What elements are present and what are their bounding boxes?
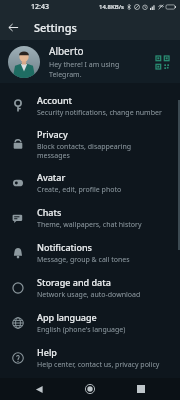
staticText: Hey there! I am using Telegram.	[49, 60, 152, 80]
button[interactable]: App language	[0, 305, 180, 340]
button[interactable]: Avatar	[0, 165, 180, 200]
button[interactable]: Storage and data	[0, 270, 180, 305]
staticText: Privacy	[37, 128, 68, 140]
staticText: English (phone's language)	[37, 325, 126, 335]
staticText: Create, edit, profile photo	[37, 185, 122, 195]
staticText: 14.8KB/s	[99, 3, 124, 11]
button[interactable]: QR code	[152, 52, 172, 72]
button[interactable]: Back	[27, 378, 51, 400]
staticText: Help	[37, 346, 57, 358]
staticText: Alberto	[49, 44, 84, 58]
staticText: Account	[37, 94, 72, 106]
button[interactable]: Notifications	[0, 235, 180, 270]
button[interactable]: Chats	[0, 200, 180, 235]
staticText: Security notifications, change number	[37, 108, 162, 118]
staticText: Notifications	[37, 241, 92, 253]
staticText: Block contacts, disappearing messages	[37, 142, 132, 160]
staticText: Network usage, auto-download	[37, 290, 141, 300]
button[interactable]: Account	[0, 88, 180, 123]
button[interactable]: Back	[0, 14, 26, 40]
staticText: Settings	[34, 20, 77, 35]
staticText: App language	[37, 311, 97, 323]
staticText: Message, group & call tones	[37, 255, 130, 265]
staticText: Chats	[37, 206, 62, 218]
button[interactable]: Alberto	[0, 40, 180, 83]
staticText: Help center, contact us, privacy policy	[37, 360, 160, 370]
staticText: Avatar	[37, 171, 66, 183]
staticText: Theme, wallpapers, chat history	[37, 220, 142, 230]
button[interactable]: Privacy	[0, 123, 180, 165]
button[interactable]: Recents	[129, 378, 153, 400]
staticText: 12:43	[31, 2, 49, 12]
button[interactable]: Home	[78, 378, 102, 400]
staticText: Storage and data	[37, 276, 111, 288]
button[interactable]: Help	[0, 340, 180, 375]
